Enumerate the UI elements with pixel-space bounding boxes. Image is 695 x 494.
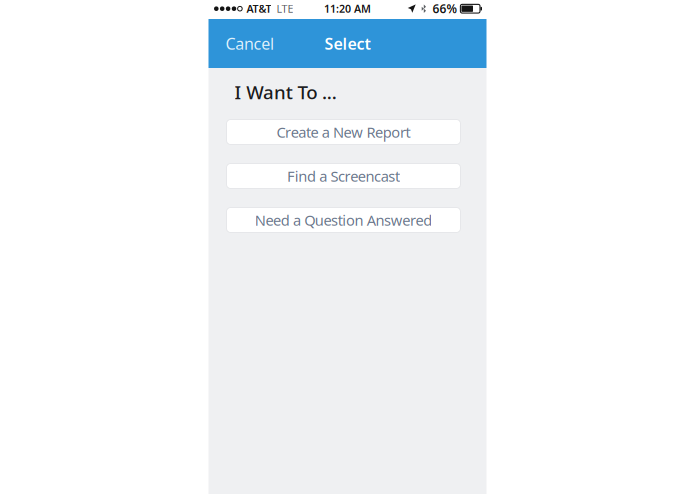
button[interactable]: Find a Screencast	[226, 163, 460, 188]
staticText: I Want To ...	[234, 80, 337, 104]
button[interactable]: Need a Question Answered	[226, 207, 460, 232]
staticText: Find a Screencast	[287, 166, 400, 186]
staticText: Create a New Report	[276, 122, 411, 142]
staticText: 11:20 AM	[324, 2, 371, 16]
staticText: LTE	[276, 2, 293, 16]
staticText: Need a Question Answered	[255, 210, 432, 230]
button[interactable]: Cancel	[225, 25, 289, 61]
button[interactable]: Create a New Report	[226, 119, 460, 144]
staticText: Select	[324, 33, 370, 54]
staticText: AT&T	[246, 2, 271, 16]
staticText: 66%	[432, 1, 457, 17]
staticText: Cancel	[225, 33, 274, 54]
